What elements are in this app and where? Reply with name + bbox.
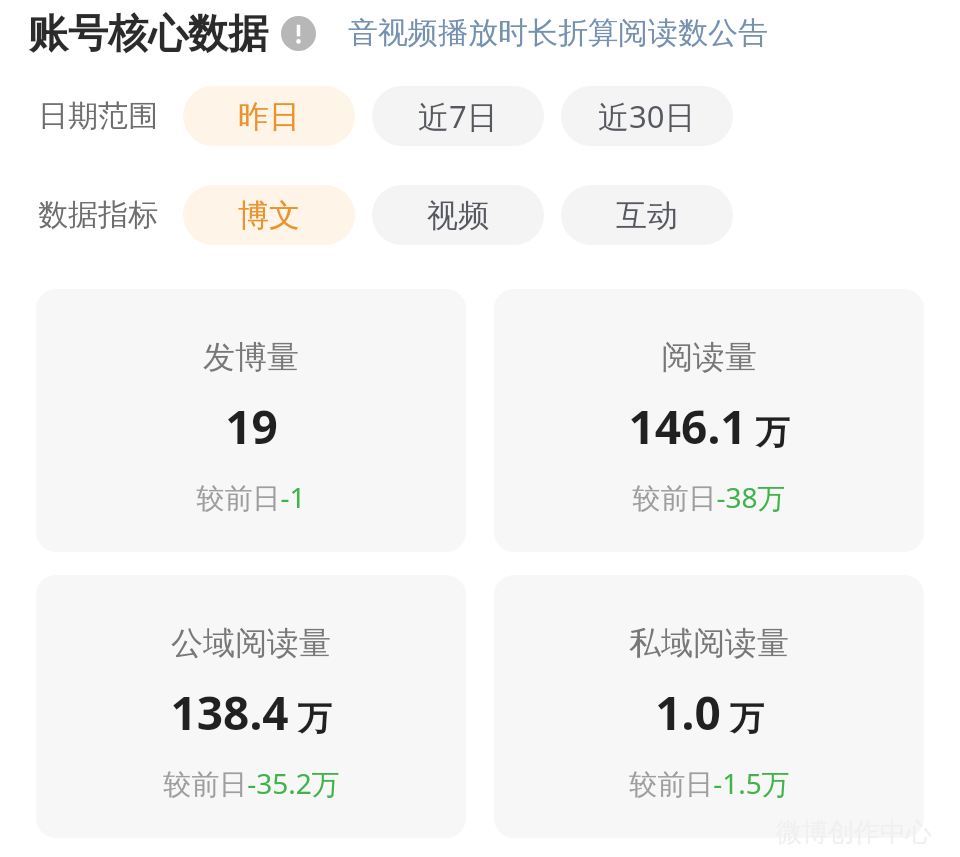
staticText: 近7日	[418, 95, 498, 137]
staticText: 1.0 万	[655, 681, 764, 744]
staticText: 146.1 万	[628, 395, 790, 458]
staticText: 19	[225, 395, 278, 458]
button[interactable]: 公域阅读量	[36, 575, 466, 838]
staticText: 较前日-38万	[632, 478, 786, 516]
staticText: 视频	[427, 196, 489, 235]
button[interactable]: 数据说明	[278, 13, 318, 53]
button[interactable]: 音视频播放时长折算阅读数公告	[348, 14, 768, 52]
staticText: 日期范围	[38, 97, 158, 135]
staticText: 数据指标	[38, 196, 158, 234]
staticText: 较前日-1	[196, 478, 306, 516]
button[interactable]: 昨日	[183, 86, 355, 146]
staticText: 公域阅读量	[171, 623, 331, 663]
staticText: 阅读量	[661, 337, 757, 377]
button[interactable]: 阅读量	[494, 289, 924, 552]
button[interactable]: 视频	[372, 185, 544, 245]
staticText: 博文	[238, 196, 300, 235]
button[interactable]: 近7日	[372, 86, 544, 146]
button[interactable]: 博文	[183, 185, 355, 245]
staticText: 发博量	[203, 337, 299, 377]
button[interactable]: 互动	[561, 185, 733, 245]
button[interactable]: 私域阅读量	[494, 575, 924, 838]
staticText: 较前日-35.2万	[163, 764, 340, 802]
button[interactable]: 发博量	[36, 289, 466, 552]
staticText: 昨日	[238, 97, 300, 136]
staticText: 微博创作中心	[776, 816, 932, 849]
staticText: 138.4 万	[170, 681, 332, 744]
staticText: 较前日-1.5万	[629, 764, 790, 802]
staticText: 互动	[616, 196, 678, 235]
button[interactable]: 近30日	[561, 86, 733, 146]
staticText: 私域阅读量	[629, 623, 789, 663]
staticText: 近30日	[598, 95, 696, 137]
staticText: 账号核心数据	[28, 8, 268, 58]
staticText: 音视频播放时长折算阅读数公告	[348, 14, 768, 52]
